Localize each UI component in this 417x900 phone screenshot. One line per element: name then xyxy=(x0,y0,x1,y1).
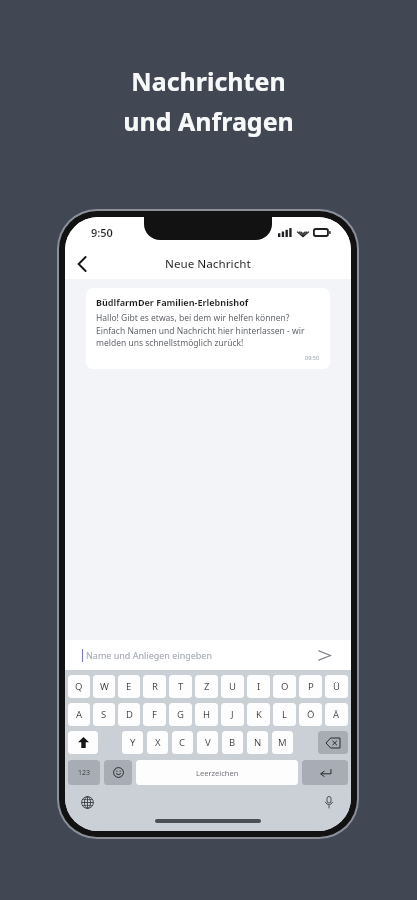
staticText: Nachrichten xyxy=(131,64,286,98)
staticText: K xyxy=(256,708,262,721)
button[interactable]: P xyxy=(299,675,322,698)
staticText: S xyxy=(101,708,107,721)
button[interactable]: N xyxy=(247,731,268,754)
button[interactable]: E xyxy=(118,675,140,698)
button[interactable]: Umschalt xyxy=(68,731,98,754)
button[interactable]: Z xyxy=(195,675,218,698)
button[interactable]: D xyxy=(118,703,140,726)
staticText: G xyxy=(177,708,184,721)
staticText: E xyxy=(126,680,132,693)
staticText: C xyxy=(179,736,186,749)
staticText: L xyxy=(282,708,287,721)
button[interactable]: Ü xyxy=(325,675,348,698)
button[interactable]: H xyxy=(195,703,218,726)
staticText: Z xyxy=(204,680,210,693)
button[interactable]: Emoji xyxy=(104,760,132,785)
staticText: I xyxy=(257,680,261,693)
button[interactable]: R xyxy=(143,675,166,698)
button[interactable]: Eingabe xyxy=(302,760,348,785)
button[interactable]: X xyxy=(147,731,168,754)
staticText: J xyxy=(231,708,234,721)
button[interactable]: F xyxy=(143,703,166,726)
staticText: Hallo! Gibt es etwas, bei dem wir helfen… xyxy=(96,312,320,348)
button[interactable]: G xyxy=(169,703,192,726)
button[interactable]: S xyxy=(93,703,115,726)
staticText: D xyxy=(126,708,133,721)
button[interactable]: B xyxy=(222,731,243,754)
button[interactable]: Senden xyxy=(314,645,334,665)
staticText: O xyxy=(281,680,289,693)
button[interactable]: BüdlfarmDer Familien-Erlebnishof xyxy=(86,288,330,369)
staticText: 123 xyxy=(78,768,91,778)
button[interactable]: V xyxy=(197,731,218,754)
button[interactable]: Ä xyxy=(325,703,348,726)
staticText: X xyxy=(155,736,161,749)
button[interactable]: K xyxy=(247,703,270,726)
staticText: R xyxy=(152,680,158,693)
staticText: Ä xyxy=(333,708,340,721)
button[interactable]: J xyxy=(221,703,244,726)
button[interactable]: Löschen xyxy=(318,731,348,754)
button[interactable]: C xyxy=(172,731,193,754)
staticText: V xyxy=(205,736,211,749)
staticText: und Anfragen xyxy=(123,104,294,138)
button[interactable]: M xyxy=(272,731,293,754)
button[interactable]: Leerzeichen xyxy=(136,760,298,785)
button[interactable]: Sprache wechseln xyxy=(76,791,98,813)
button[interactable]: O xyxy=(273,675,296,698)
staticText: 09:50 xyxy=(305,354,320,361)
staticText: F xyxy=(152,708,157,721)
staticText: Ö xyxy=(307,708,315,721)
staticText: BüdlfarmDer Familien-Erlebnishof xyxy=(96,296,249,308)
staticText: P xyxy=(308,680,314,693)
staticText: U xyxy=(229,680,236,693)
staticText: B xyxy=(229,736,236,749)
staticText: T xyxy=(178,680,184,693)
staticText: Neue Nachricht xyxy=(165,256,251,272)
staticText: M xyxy=(278,736,287,749)
staticText: Leerzeichen xyxy=(196,768,239,778)
button[interactable]: Zurück xyxy=(65,248,99,279)
button[interactable]: A xyxy=(68,703,90,726)
staticText: Ü xyxy=(333,680,340,693)
staticText: H xyxy=(203,708,211,721)
staticText: N xyxy=(254,736,262,749)
button[interactable]: 123 xyxy=(68,760,100,785)
button[interactable]: L xyxy=(273,703,296,726)
button[interactable]: Ö xyxy=(299,703,322,726)
staticText: Y xyxy=(130,736,136,749)
staticText: W xyxy=(100,680,109,693)
staticText: Q xyxy=(75,680,83,693)
button[interactable]: Name und Anliegen eingeben xyxy=(65,640,351,670)
button[interactable]: W xyxy=(93,675,115,698)
staticText: A xyxy=(76,708,83,721)
staticText: 9:50 xyxy=(91,225,113,240)
button[interactable]: I xyxy=(247,675,270,698)
button[interactable]: T xyxy=(169,675,192,698)
button[interactable]: Y xyxy=(122,731,143,754)
staticText: Name und Anliegen eingeben xyxy=(86,649,213,661)
button[interactable]: Diktieren xyxy=(318,791,340,813)
button[interactable]: Q xyxy=(68,675,90,698)
button[interactable]: U xyxy=(221,675,244,698)
